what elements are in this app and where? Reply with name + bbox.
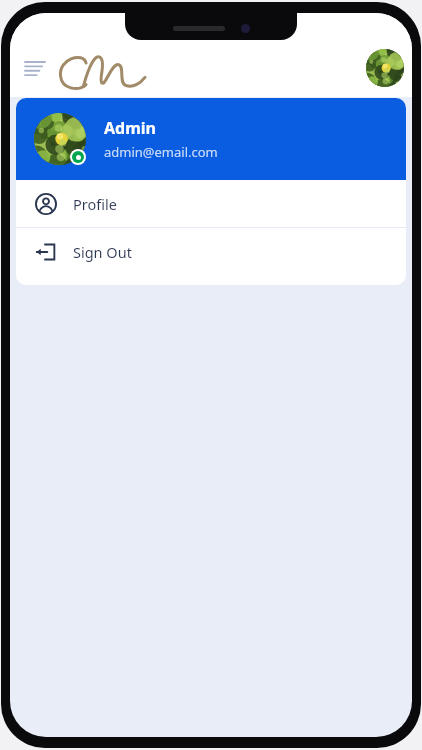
button[interactable]: Account [366, 49, 404, 87]
staticText: Sign Out [73, 242, 132, 262]
staticText: admin@email.com [104, 143, 218, 161]
staticText: Profile [73, 194, 117, 214]
staticText: Admin [104, 117, 156, 139]
button[interactable]: Open navigation menu [19, 55, 51, 85]
button[interactable]: Profile [16, 180, 406, 227]
button[interactable]: Admin [16, 98, 406, 180]
button[interactable]: Sign Out [16, 228, 406, 275]
